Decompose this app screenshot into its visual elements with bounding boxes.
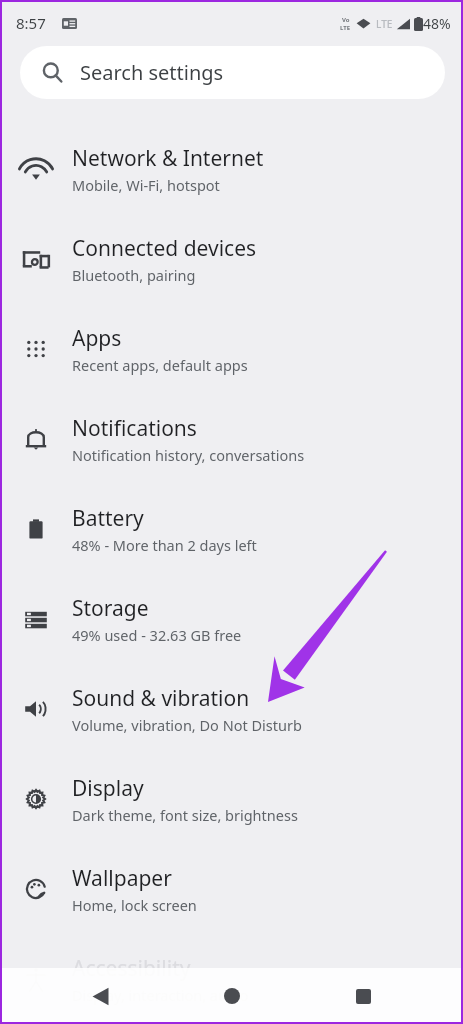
button[interactable]: Wallpaper: [0, 844, 463, 934]
staticText: Display: [72, 774, 144, 803]
staticText: 8:57: [16, 13, 46, 33]
staticText: LTE: [340, 24, 351, 32]
staticText: Sound & vibration: [72, 684, 250, 713]
staticText: Accessibility: [72, 954, 191, 983]
staticText: Display, interaction, audio: [72, 985, 249, 1005]
staticText: 49% used - 32.63 GB free: [72, 625, 242, 645]
staticText: Mobile, Wi-Fi, hotspot: [72, 175, 220, 195]
staticText: Connected devices: [72, 234, 257, 263]
staticText: Bluetooth, pairing: [72, 265, 196, 285]
button[interactable]: Battery: [0, 484, 463, 574]
staticText: 48% - More than 2 days left: [72, 535, 257, 555]
button[interactable]: Sound & vibration: [0, 664, 463, 754]
button[interactable]: Network & Internet: [0, 124, 463, 214]
staticText: Wallpaper: [72, 864, 172, 893]
button[interactable]: Storage: [0, 574, 463, 664]
staticText: Home, lock screen: [72, 895, 197, 915]
staticText: Storage: [72, 594, 149, 623]
button[interactable]: Back: [78, 974, 122, 1018]
button[interactable]: Notifications: [0, 394, 463, 484]
button[interactable]: Search settings: [20, 46, 445, 99]
staticText: Notification history, conversations: [72, 445, 305, 465]
staticText: Apps: [72, 324, 122, 353]
staticText: Network & Internet: [72, 144, 264, 173]
button[interactable]: Recent apps: [341, 974, 385, 1018]
staticText: Recent apps, default apps: [72, 355, 248, 375]
staticText: Dark theme, font size, brightness: [72, 805, 298, 825]
staticText: Battery: [72, 504, 144, 533]
button[interactable]: Display: [0, 754, 463, 844]
staticText: Vo: [342, 16, 350, 24]
button[interactable]: Apps: [0, 304, 463, 394]
button[interactable]: Connected devices: [0, 214, 463, 304]
staticText: Volume, vibration, Do Not Disturb: [72, 715, 302, 735]
button[interactable]: Accessibility: [0, 934, 463, 1024]
button[interactable]: Home: [210, 974, 254, 1018]
staticText: 48%: [423, 14, 451, 33]
staticText: Notifications: [72, 414, 197, 443]
staticText: LTE: [376, 17, 393, 31]
staticText: Search settings: [80, 59, 224, 86]
